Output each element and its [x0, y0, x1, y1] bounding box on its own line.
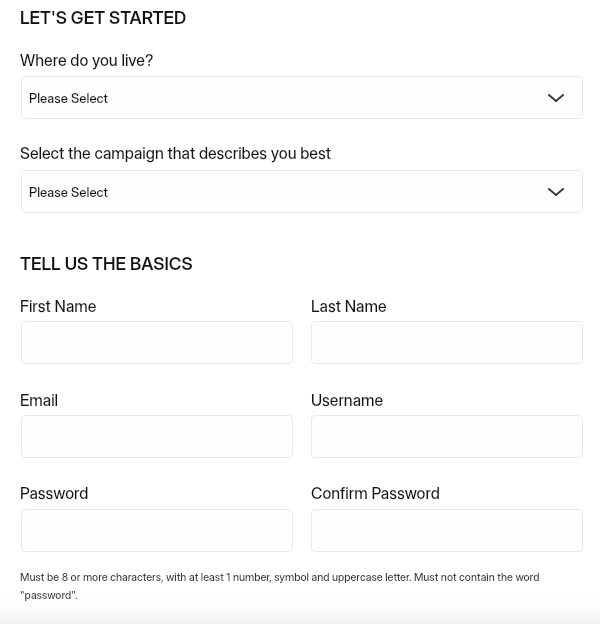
staticText: Select the campaign that describes you b… [20, 144, 332, 163]
button[interactable]: Email [21, 415, 293, 458]
staticText: Password [20, 484, 89, 503]
button[interactable]: Please Select [21, 76, 583, 119]
button[interactable]: Username [311, 415, 583, 458]
button[interactable]: Password [21, 509, 293, 552]
staticText: Email [20, 391, 59, 410]
other: Expand [548, 94, 564, 102]
button[interactable]: First Name [21, 321, 293, 364]
button[interactable]: Confirm Password [311, 509, 583, 552]
staticText: Must be 8 or more characters, with at le… [20, 571, 548, 602]
staticText: Please Select [29, 90, 108, 106]
staticText: First Name [20, 297, 97, 316]
other: Expand [548, 188, 564, 196]
staticText: Where do you live? [20, 51, 154, 70]
button[interactable]: Last Name [311, 321, 583, 364]
staticText: Confirm Password [311, 484, 440, 503]
staticText: Please Select [29, 184, 108, 200]
staticText: LET'S GET STARTED [20, 7, 187, 28]
staticText: TELL US THE BASICS [20, 253, 193, 274]
staticText: Last Name [311, 297, 387, 316]
staticText: Username [311, 391, 384, 410]
button[interactable]: Please Select [21, 170, 583, 213]
